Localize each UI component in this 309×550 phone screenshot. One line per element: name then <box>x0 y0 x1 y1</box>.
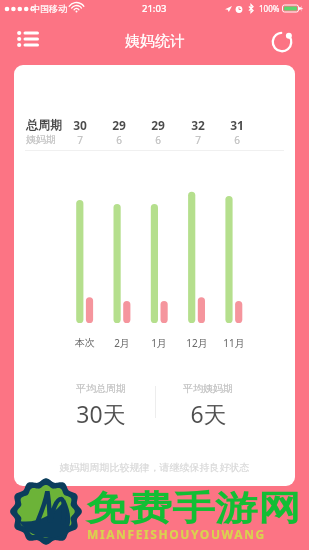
staticText: 100% <box>259 3 280 14</box>
staticText: 29 <box>104 117 134 133</box>
staticText: 姨妈期 <box>26 133 56 146</box>
staticText: 中国移动 <box>31 3 67 14</box>
staticText: 1月 <box>139 336 179 350</box>
staticText: 平均总周期 <box>76 382 126 395</box>
staticText: 姨妈统计 <box>125 32 185 51</box>
staticText: 11月 <box>214 336 254 350</box>
staticText: 7 <box>183 133 213 147</box>
staticText: 31 <box>222 117 252 133</box>
staticText: 32 <box>183 117 213 133</box>
staticText: 2月 <box>102 336 142 350</box>
staticText: 6 <box>222 133 252 147</box>
staticText: 6天 <box>190 398 227 429</box>
staticText: 12月 <box>177 336 217 350</box>
staticText: 姨妈期周期比较规律，请继续保持良好状态 <box>14 461 295 474</box>
staticText: 平均姨妈期 <box>183 382 233 395</box>
staticText: 免费手游网 <box>86 487 301 530</box>
button[interactable]: Menu <box>6 24 48 53</box>
staticText: 本次 <box>65 336 105 349</box>
button[interactable]: Refresh <box>261 23 303 60</box>
staticText: 30天 <box>76 398 126 429</box>
staticText: 30 <box>65 117 95 133</box>
staticText: 总周期 <box>26 117 62 132</box>
staticText: 6 <box>104 133 134 147</box>
staticText: 21:03 <box>142 2 167 15</box>
staticText: MIANFEISHOUYOUWANG <box>87 526 266 542</box>
staticText: 6 <box>143 133 173 147</box>
staticText: 29 <box>143 117 173 133</box>
staticText: 7 <box>65 133 95 147</box>
